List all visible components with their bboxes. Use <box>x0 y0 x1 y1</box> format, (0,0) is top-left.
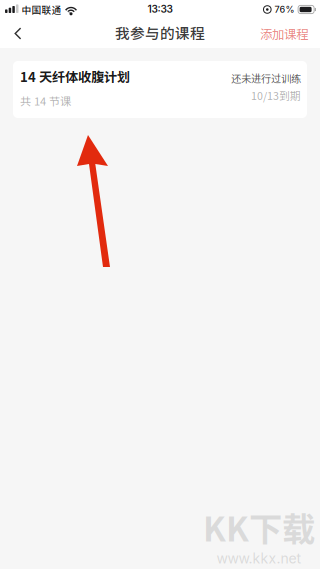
staticText: 76% <box>275 4 295 15</box>
staticText: 还未进行过训练 <box>231 71 301 85</box>
staticText: 我参与的课程 <box>115 22 205 43</box>
staticText: 10/13到期 <box>251 88 301 103</box>
staticText: 添加课程 <box>260 24 308 42</box>
staticText: KK下载 <box>203 503 315 551</box>
button[interactable]: 添加课程 <box>260 19 320 48</box>
staticText: 13:33 <box>147 3 172 15</box>
staticText: 14 天纤体收腹计划 <box>20 67 130 86</box>
staticText: www.kkx.net <box>216 550 301 567</box>
staticText: 中国联通 <box>21 2 61 16</box>
button[interactable]: 14 天纤体收腹计划 <box>13 61 307 118</box>
staticText: 共 14 节课 <box>20 93 71 109</box>
button[interactable]: Back <box>0 19 36 48</box>
